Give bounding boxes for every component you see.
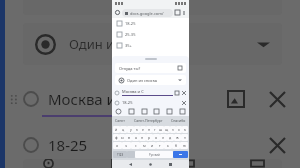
button[interactable]: я — [113, 142, 122, 149]
button[interactable]: Editor tool 4 — [153, 108, 160, 115]
button[interactable]: Один из с — [23, 23, 282, 65]
button[interactable]: н — [146, 126, 152, 133]
other: Add image — [175, 91, 179, 95]
button[interactable]: Москва и С — [115, 87, 186, 98]
button[interactable]: о — [153, 134, 160, 141]
button[interactable]: в — [125, 134, 132, 141]
button[interactable]: й — [113, 126, 120, 133]
staticText: 18-25 — [48, 135, 88, 155]
button[interactable]: Toolbar action 3 — [176, 159, 198, 168]
staticText: ?123 — [117, 153, 124, 157]
staticText: е — [142, 127, 144, 132]
staticText: й — [115, 127, 118, 132]
staticText: п — [141, 135, 144, 140]
staticText: docs.google.com/forms — [130, 11, 170, 16]
button[interactable]: у — [127, 126, 134, 133]
button[interactable]: ы — [119, 134, 125, 141]
button[interactable]: Remove option — [266, 134, 288, 156]
button[interactable]: Toolbar action 4 — [246, 159, 268, 168]
staticText: Москва и С — [48, 89, 130, 109]
button[interactable]: а — [132, 134, 139, 141]
staticText: ч — [125, 143, 128, 148]
button[interactable]: Editor tool 6 — [179, 108, 186, 115]
button[interactable]: г — [152, 126, 158, 133]
button[interactable]: Editor tool 5 — [166, 108, 173, 115]
button[interactable]: 18-25 — [117, 18, 184, 29]
button[interactable]: ч — [122, 142, 131, 149]
button[interactable]: ж — [174, 134, 181, 141]
button[interactable]: Toolbar action 2 — [107, 159, 129, 168]
staticText: Спасибо — [171, 118, 186, 123]
staticText: Один из списка — [127, 78, 158, 83]
other: Home — [149, 163, 152, 166]
button[interactable]: ь — [164, 142, 172, 149]
other: Back — [129, 163, 132, 166]
staticText: л — [162, 135, 165, 140]
button[interactable]: ?123 — [113, 151, 127, 158]
button[interactable]: 25-35 — [117, 29, 184, 40]
other: More options — [182, 11, 186, 15]
staticText: у — [130, 127, 132, 132]
staticText: я — [116, 143, 119, 148]
staticText: м — [143, 143, 146, 148]
button[interactable]: ц — [120, 126, 127, 133]
staticText: б — [175, 143, 178, 148]
button[interactable]: х — [176, 126, 182, 133]
staticText: а — [135, 135, 137, 140]
button[interactable]: 35+ — [117, 40, 184, 51]
button[interactable]: Add image — [226, 89, 246, 109]
staticText: ю — [183, 143, 186, 148]
button[interactable]: и — [148, 142, 156, 149]
button[interactable]: Remove option — [266, 88, 288, 110]
staticText: д — [169, 135, 172, 140]
button[interactable]: м — [140, 142, 148, 149]
button[interactable]: 18-25 — [0, 131, 300, 159]
button[interactable]: Enter — [173, 151, 188, 158]
button[interactable]: е — [140, 126, 146, 133]
button[interactable] — [23, 0, 282, 15]
staticText: р — [148, 135, 151, 140]
button[interactable]: к — [134, 126, 140, 133]
other: Remove — [182, 91, 186, 95]
other: Page info — [115, 10, 120, 15]
staticText: Санкт — [115, 118, 125, 123]
button[interactable]: э — [181, 134, 188, 141]
button[interactable]: 18-25 — [115, 98, 186, 107]
staticText: с — [135, 143, 137, 148]
button[interactable]: Москва и С — [0, 83, 300, 115]
button[interactable]: Editor tool 2 — [128, 108, 135, 115]
button[interactable]: щ — [164, 126, 170, 133]
button[interactable]: Editor tool 3 — [141, 108, 148, 115]
staticText: ы — [121, 135, 124, 140]
button[interactable]: л — [160, 134, 167, 141]
button[interactable]: п — [139, 134, 146, 141]
staticText: ъ — [184, 127, 187, 132]
button[interactable]: ю — [180, 142, 188, 149]
button[interactable]: р — [146, 134, 153, 141]
button[interactable]: Toolbar action 1 — [37, 159, 59, 168]
staticText: к — [136, 127, 138, 132]
staticText: 18-25 — [122, 100, 133, 105]
button[interactable]: д — [167, 134, 174, 141]
button[interactable]: ф — [113, 134, 119, 141]
other: Remove — [182, 101, 186, 105]
button[interactable]: с — [131, 142, 140, 149]
button[interactable]: Русский — [135, 151, 173, 158]
button[interactable]: ъ — [182, 126, 188, 133]
button[interactable]: т — [156, 142, 164, 149]
staticText: Откуда ты? — [119, 66, 141, 71]
staticText: т — [159, 143, 161, 148]
staticText: о — [155, 135, 158, 140]
staticText: ж — [176, 135, 179, 140]
button[interactable]: з — [170, 126, 176, 133]
button[interactable]: docs.google.com/forms — [122, 9, 173, 17]
button[interactable]: б — [172, 142, 180, 149]
staticText: Москва и С — [122, 89, 144, 94]
button[interactable]: ш — [158, 126, 164, 133]
button[interactable]: Один из списка — [115, 75, 186, 85]
staticText: в — [128, 135, 130, 140]
button[interactable]: Editor tool 1 — [115, 108, 122, 115]
button[interactable]: Откуда ты? — [115, 63, 186, 73]
